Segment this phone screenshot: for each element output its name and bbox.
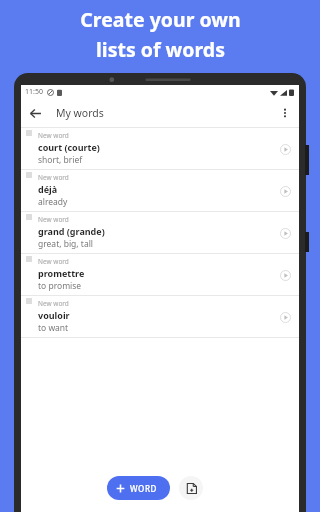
staticText: New word (38, 131, 69, 140)
button[interactable]: WORD (107, 476, 170, 500)
staticText: to want (38, 322, 69, 334)
staticText: great, big, tall (38, 238, 94, 250)
staticText: 11:50 (25, 87, 43, 97)
button[interactable]: More options (271, 99, 299, 127)
staticText: vouloir (38, 309, 70, 321)
staticText: New word (38, 299, 69, 308)
button[interactable]: Play pronunciation (277, 183, 293, 199)
staticText: promettre (38, 267, 85, 279)
staticText: WORD (130, 483, 158, 494)
staticText: short, brief (38, 154, 83, 166)
staticText: New word (38, 173, 69, 182)
staticText: to promise (38, 280, 82, 292)
staticText: Create your own (80, 6, 241, 33)
button[interactable]: Play pronunciation (277, 267, 293, 283)
button[interactable]: New word (21, 254, 299, 295)
staticText: My words (56, 106, 104, 120)
staticText: déjà (38, 183, 58, 195)
button[interactable]: New word (21, 128, 299, 169)
staticText: already (38, 196, 68, 208)
button[interactable]: Play pronunciation (277, 309, 293, 325)
button[interactable]: Add document (179, 476, 203, 500)
button[interactable]: New word (21, 212, 299, 253)
staticText: lists of words (96, 36, 225, 63)
button[interactable]: Play pronunciation (277, 225, 293, 241)
staticText: court (courte) (38, 141, 100, 153)
button[interactable]: New word (21, 170, 299, 211)
staticText: grand (grande) (38, 225, 105, 237)
staticText: New word (38, 215, 69, 224)
button[interactable]: Back (21, 99, 49, 127)
staticText: New word (38, 257, 69, 266)
button[interactable]: New word (21, 296, 299, 337)
button[interactable]: Play pronunciation (277, 141, 293, 157)
